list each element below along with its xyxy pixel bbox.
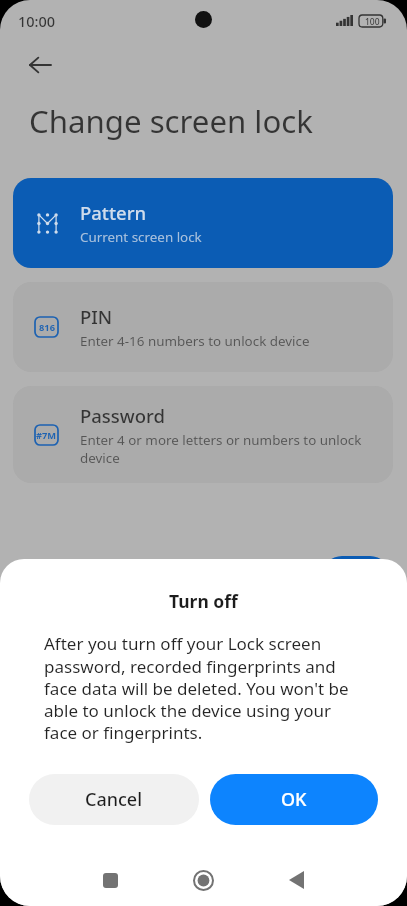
staticText: Current screen lock [80,228,202,246]
button[interactable]: #7M [13,386,393,483]
button[interactable]: Back [18,43,62,87]
staticText: Password [80,403,166,428]
button[interactable]: Home [177,855,230,905]
staticText: Enter 4-16 numbers to unlock device [80,332,310,350]
staticText: #7M [36,429,57,442]
staticText: Change screen lock [29,100,313,142]
staticText: 816 [39,321,55,334]
button[interactable] [322,556,390,596]
button[interactable]: Back [270,855,323,905]
staticText: OK [281,787,307,812]
staticText: After you turn off your Lock screen pass… [44,632,362,743]
button[interactable]: Recents [84,855,137,905]
staticText: 100 [365,16,380,28]
button[interactable]: Pattern [13,178,393,268]
staticText: Pattern [80,200,147,225]
button[interactable]: Cancel [29,774,199,825]
staticText: PIN [80,304,113,329]
button[interactable]: 816 [13,282,393,372]
staticText: Cancel [85,787,143,812]
staticText: Enter 4 or more letters or numbers to un… [80,431,371,467]
button[interactable]: OK [210,774,378,825]
staticText: 10:00 [18,11,56,31]
staticText: Turn off [169,589,238,613]
